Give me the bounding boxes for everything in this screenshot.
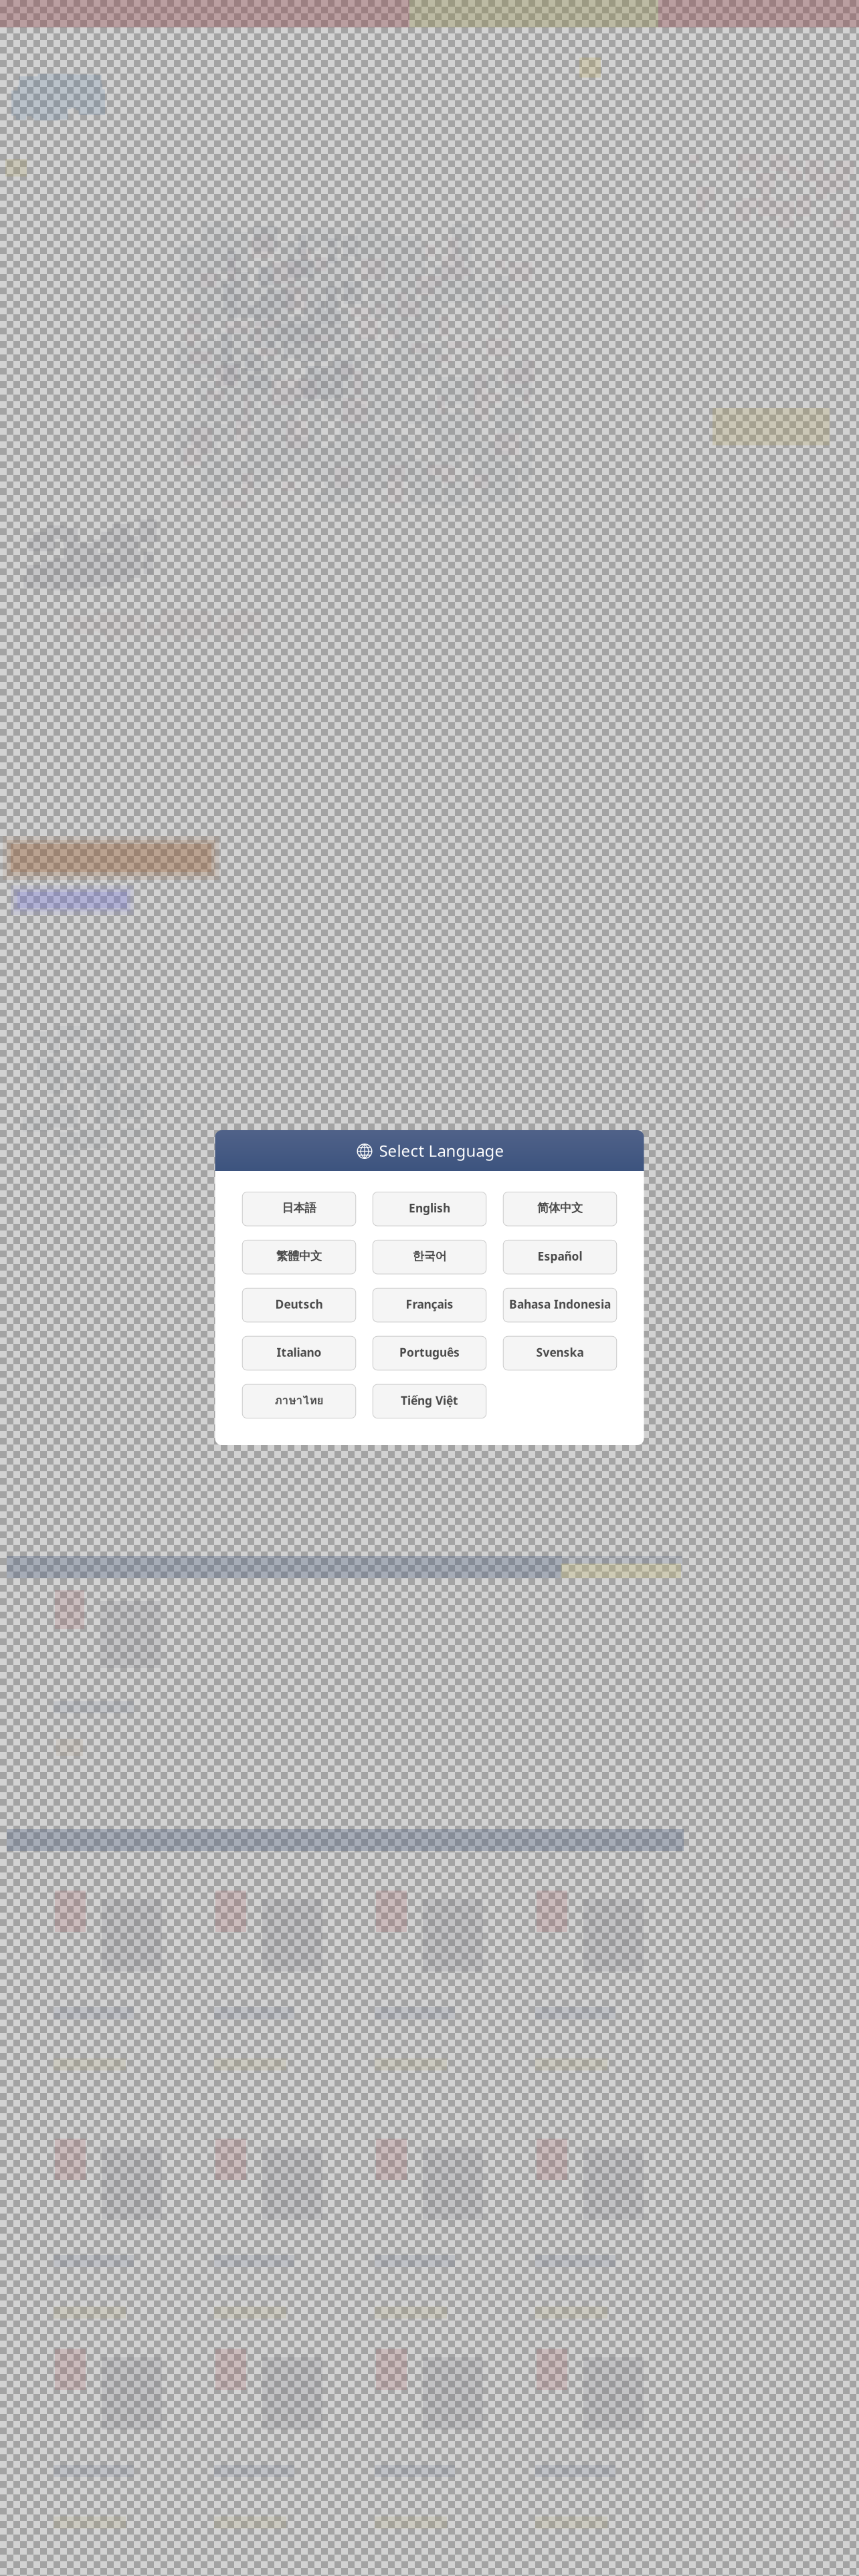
button[interactable]: Português	[373, 1336, 486, 1370]
button[interactable]: Español	[503, 1240, 617, 1274]
button[interactable]: ภาษาไทย	[242, 1384, 356, 1418]
staticText: 日本語	[282, 1201, 316, 1215]
staticText: Bahasa Indonesia	[509, 1296, 611, 1312]
button[interactable]: Bahasa Indonesia	[503, 1288, 617, 1322]
button[interactable]: 한국어	[373, 1240, 486, 1274]
button[interactable]: 日本語	[242, 1192, 356, 1226]
staticText: Español	[538, 1248, 582, 1264]
staticText: Tiếng Việt	[401, 1393, 458, 1408]
button[interactable]: English	[373, 1192, 486, 1226]
staticText: 한국어	[412, 1249, 447, 1263]
button[interactable]: Deutsch	[242, 1288, 356, 1322]
staticText: Svenska	[536, 1345, 584, 1360]
button[interactable]: Italiano	[242, 1336, 356, 1370]
button[interactable]: Svenska	[503, 1336, 617, 1370]
staticText: 简体中文	[537, 1201, 583, 1215]
staticText: Italiano	[277, 1345, 321, 1360]
button[interactable]: 简体中文	[503, 1192, 617, 1226]
staticText: ภาษาไทย	[275, 1391, 323, 1409]
staticText: Português	[399, 1345, 460, 1360]
staticText: English	[409, 1200, 450, 1216]
button[interactable]: Français	[373, 1288, 486, 1322]
staticText: 繁體中文	[276, 1249, 322, 1263]
staticText: Deutsch	[275, 1296, 323, 1312]
staticText: Select Language	[379, 1140, 504, 1161]
button[interactable]: 繁體中文	[242, 1240, 356, 1274]
button[interactable]: Tiếng Việt	[373, 1384, 486, 1418]
staticText: Français	[406, 1296, 453, 1312]
